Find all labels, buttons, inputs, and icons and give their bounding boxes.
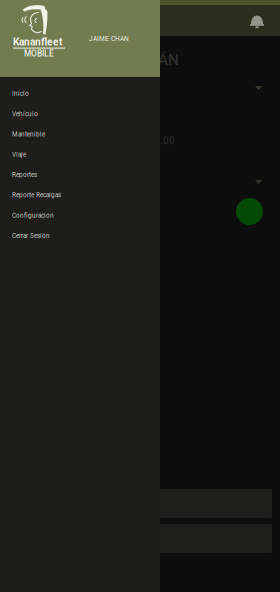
button[interactable]: Notificaciones [250,4,280,36]
button[interactable]: Mantenible [0,124,160,144]
staticText: Mantenible [12,130,45,138]
button[interactable]: Cerrar Sesión [0,226,160,246]
staticText: 0.00 [154,135,175,147]
staticText: Viaje [12,151,26,158]
staticText: Vehículo [12,110,38,118]
staticText: JAIME CHAN [89,35,129,43]
staticText: MOBILE [24,49,54,58]
button[interactable]: Estado [236,198,263,225]
button[interactable]: Configuración [0,205,160,226]
button[interactable]: Reporte Recargas [0,185,160,205]
staticText: Configuración [12,212,54,219]
button[interactable]: Inicio [0,83,160,104]
staticText: Inicio [12,90,29,97]
button[interactable]: Reportes [0,165,160,185]
staticText: Kananfleet [13,36,62,48]
staticText: Reportes [12,171,37,179]
staticText: JAIME CHÁN [89,51,179,69]
staticText: Cerrar Sesión [12,232,50,239]
staticText: Reporte Recargas [12,191,61,199]
button[interactable]: Vehículo [0,104,160,124]
button[interactable]: Viaje [0,144,160,165]
